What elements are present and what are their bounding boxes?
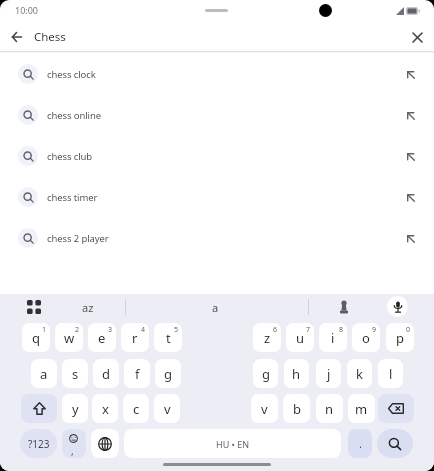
staticText: a — [212, 300, 219, 315]
staticText: v — [261, 400, 268, 418]
button[interactable]: az — [78, 299, 98, 315]
button[interactable] — [5, 26, 28, 48]
staticText: w — [64, 329, 75, 347]
staticText: 5 — [174, 325, 179, 335]
staticText: n — [325, 400, 334, 418]
staticText: ?123 — [28, 437, 50, 451]
button[interactable]: ?123 — [20, 429, 57, 458]
staticText: az — [82, 300, 94, 315]
staticText: 4 — [141, 325, 146, 335]
staticText: x — [102, 400, 109, 418]
staticText: chess online — [47, 109, 101, 122]
staticText: q — [32, 329, 40, 347]
staticText: chess 2 player — [47, 232, 109, 245]
staticText: , — [71, 444, 74, 456]
staticText: l — [389, 365, 393, 383]
staticText: i — [331, 329, 335, 347]
staticText: f — [135, 365, 140, 383]
button[interactable] — [377, 429, 413, 458]
button[interactable]: r — [121, 323, 149, 352]
staticText: k — [356, 365, 363, 383]
staticText: z — [264, 329, 271, 347]
staticText: d — [102, 365, 110, 383]
button[interactable]: m — [348, 394, 375, 423]
staticText: c — [133, 400, 140, 418]
button[interactable] — [91, 429, 119, 458]
button[interactable]: s — [62, 359, 88, 388]
staticText: h — [292, 365, 301, 383]
staticText: g — [262, 365, 270, 383]
staticText: chess club — [47, 150, 93, 163]
staticText: t — [166, 329, 171, 347]
button[interactable]: e — [88, 323, 116, 352]
button[interactable]: v — [251, 394, 278, 423]
button[interactable]: c — [123, 394, 149, 423]
button[interactable]: z — [253, 323, 281, 352]
staticText: chess clock — [47, 68, 96, 81]
staticText: HU • EN — [216, 438, 250, 450]
button[interactable]: chess online — [0, 95, 434, 136]
button[interactable] — [21, 394, 57, 423]
staticText: p — [396, 329, 404, 347]
staticText: v — [164, 400, 171, 418]
button[interactable]: p — [386, 323, 414, 352]
button[interactable]: chess 2 player — [0, 218, 434, 259]
staticText: b — [293, 400, 301, 418]
staticText: j — [327, 365, 331, 383]
button[interactable]: . — [348, 429, 372, 458]
button[interactable]: w — [55, 323, 83, 352]
staticText: a — [40, 365, 48, 383]
staticText: 1 — [42, 325, 47, 335]
button[interactable]: n — [316, 394, 343, 423]
button[interactable]: i — [319, 323, 347, 352]
staticText: e — [98, 329, 106, 347]
button[interactable]: b — [283, 394, 310, 423]
staticText: u — [296, 329, 305, 347]
staticText: s — [72, 365, 79, 383]
staticText: 10:00 — [15, 4, 39, 16]
button[interactable]: a — [31, 359, 57, 388]
button[interactable]: g — [155, 359, 181, 388]
button[interactable]: l — [378, 359, 403, 388]
button[interactable]: chess timer — [0, 177, 434, 218]
staticText: 3 — [108, 325, 113, 335]
staticText: . — [359, 436, 362, 451]
button[interactable]: q — [22, 323, 50, 352]
button[interactable]: x — [92, 394, 118, 423]
button[interactable]: k — [347, 359, 372, 388]
staticText: o — [362, 329, 370, 347]
staticText: 6 — [273, 325, 278, 335]
staticText: m — [355, 400, 368, 418]
button[interactable]: o — [352, 323, 380, 352]
button[interactable]: , — [62, 429, 86, 458]
button[interactable]: g — [253, 359, 278, 388]
button[interactable]: a — [200, 299, 230, 315]
button[interactable]: chess clock — [0, 54, 434, 95]
button[interactable]: j — [316, 359, 341, 388]
button[interactable] — [378, 394, 414, 423]
button[interactable]: f — [124, 359, 150, 388]
staticText: 0 — [406, 325, 411, 335]
button[interactable] — [387, 296, 408, 317]
staticText: 9 — [372, 325, 377, 335]
button[interactable]: u — [286, 323, 314, 352]
staticText: r — [132, 329, 138, 347]
staticText: Chess — [34, 29, 66, 45]
button[interactable]: y — [62, 394, 88, 423]
button[interactable] — [24, 298, 43, 316]
button[interactable]: t — [154, 323, 182, 352]
button[interactable]: HU • EN — [124, 429, 341, 458]
button[interactable] — [339, 300, 349, 314]
button[interactable] — [406, 26, 428, 48]
button[interactable]: h — [284, 359, 309, 388]
staticText: y — [72, 400, 79, 418]
staticText: g — [164, 365, 172, 383]
button[interactable]: chess club — [0, 136, 434, 177]
button[interactable]: v — [154, 394, 180, 423]
staticText: 2 — [75, 325, 80, 335]
staticText: 8 — [339, 325, 344, 335]
button[interactable]: d — [93, 359, 119, 388]
staticText: 7 — [306, 325, 311, 335]
staticText: chess timer — [47, 191, 98, 204]
